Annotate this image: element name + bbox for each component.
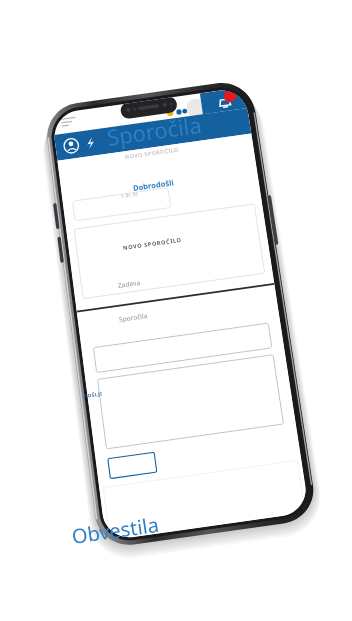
staticText: Sporočila (118, 311, 148, 324)
staticText: 1. 01. 01 (121, 190, 139, 199)
staticText: POŠLJI (83, 390, 103, 400)
staticText: NOVO SPOROČILO (124, 145, 180, 160)
button[interactable]: Message field (92, 277, 294, 372)
staticText: Zadeva (117, 278, 141, 290)
staticText: Dobrodošli (132, 177, 174, 193)
staticText: NOVO SPOROČILO (122, 236, 183, 252)
staticText: Sporočila (105, 109, 204, 152)
button[interactable]: Pošlji (74, 377, 123, 406)
button[interactable]: New message (104, 128, 220, 172)
staticText: Obvestila (70, 511, 161, 550)
button[interactable]: Dobrodošli message (103, 142, 304, 216)
button[interactable]: Subject field (100, 244, 296, 299)
button[interactable]: Obvestila (50, 492, 177, 546)
